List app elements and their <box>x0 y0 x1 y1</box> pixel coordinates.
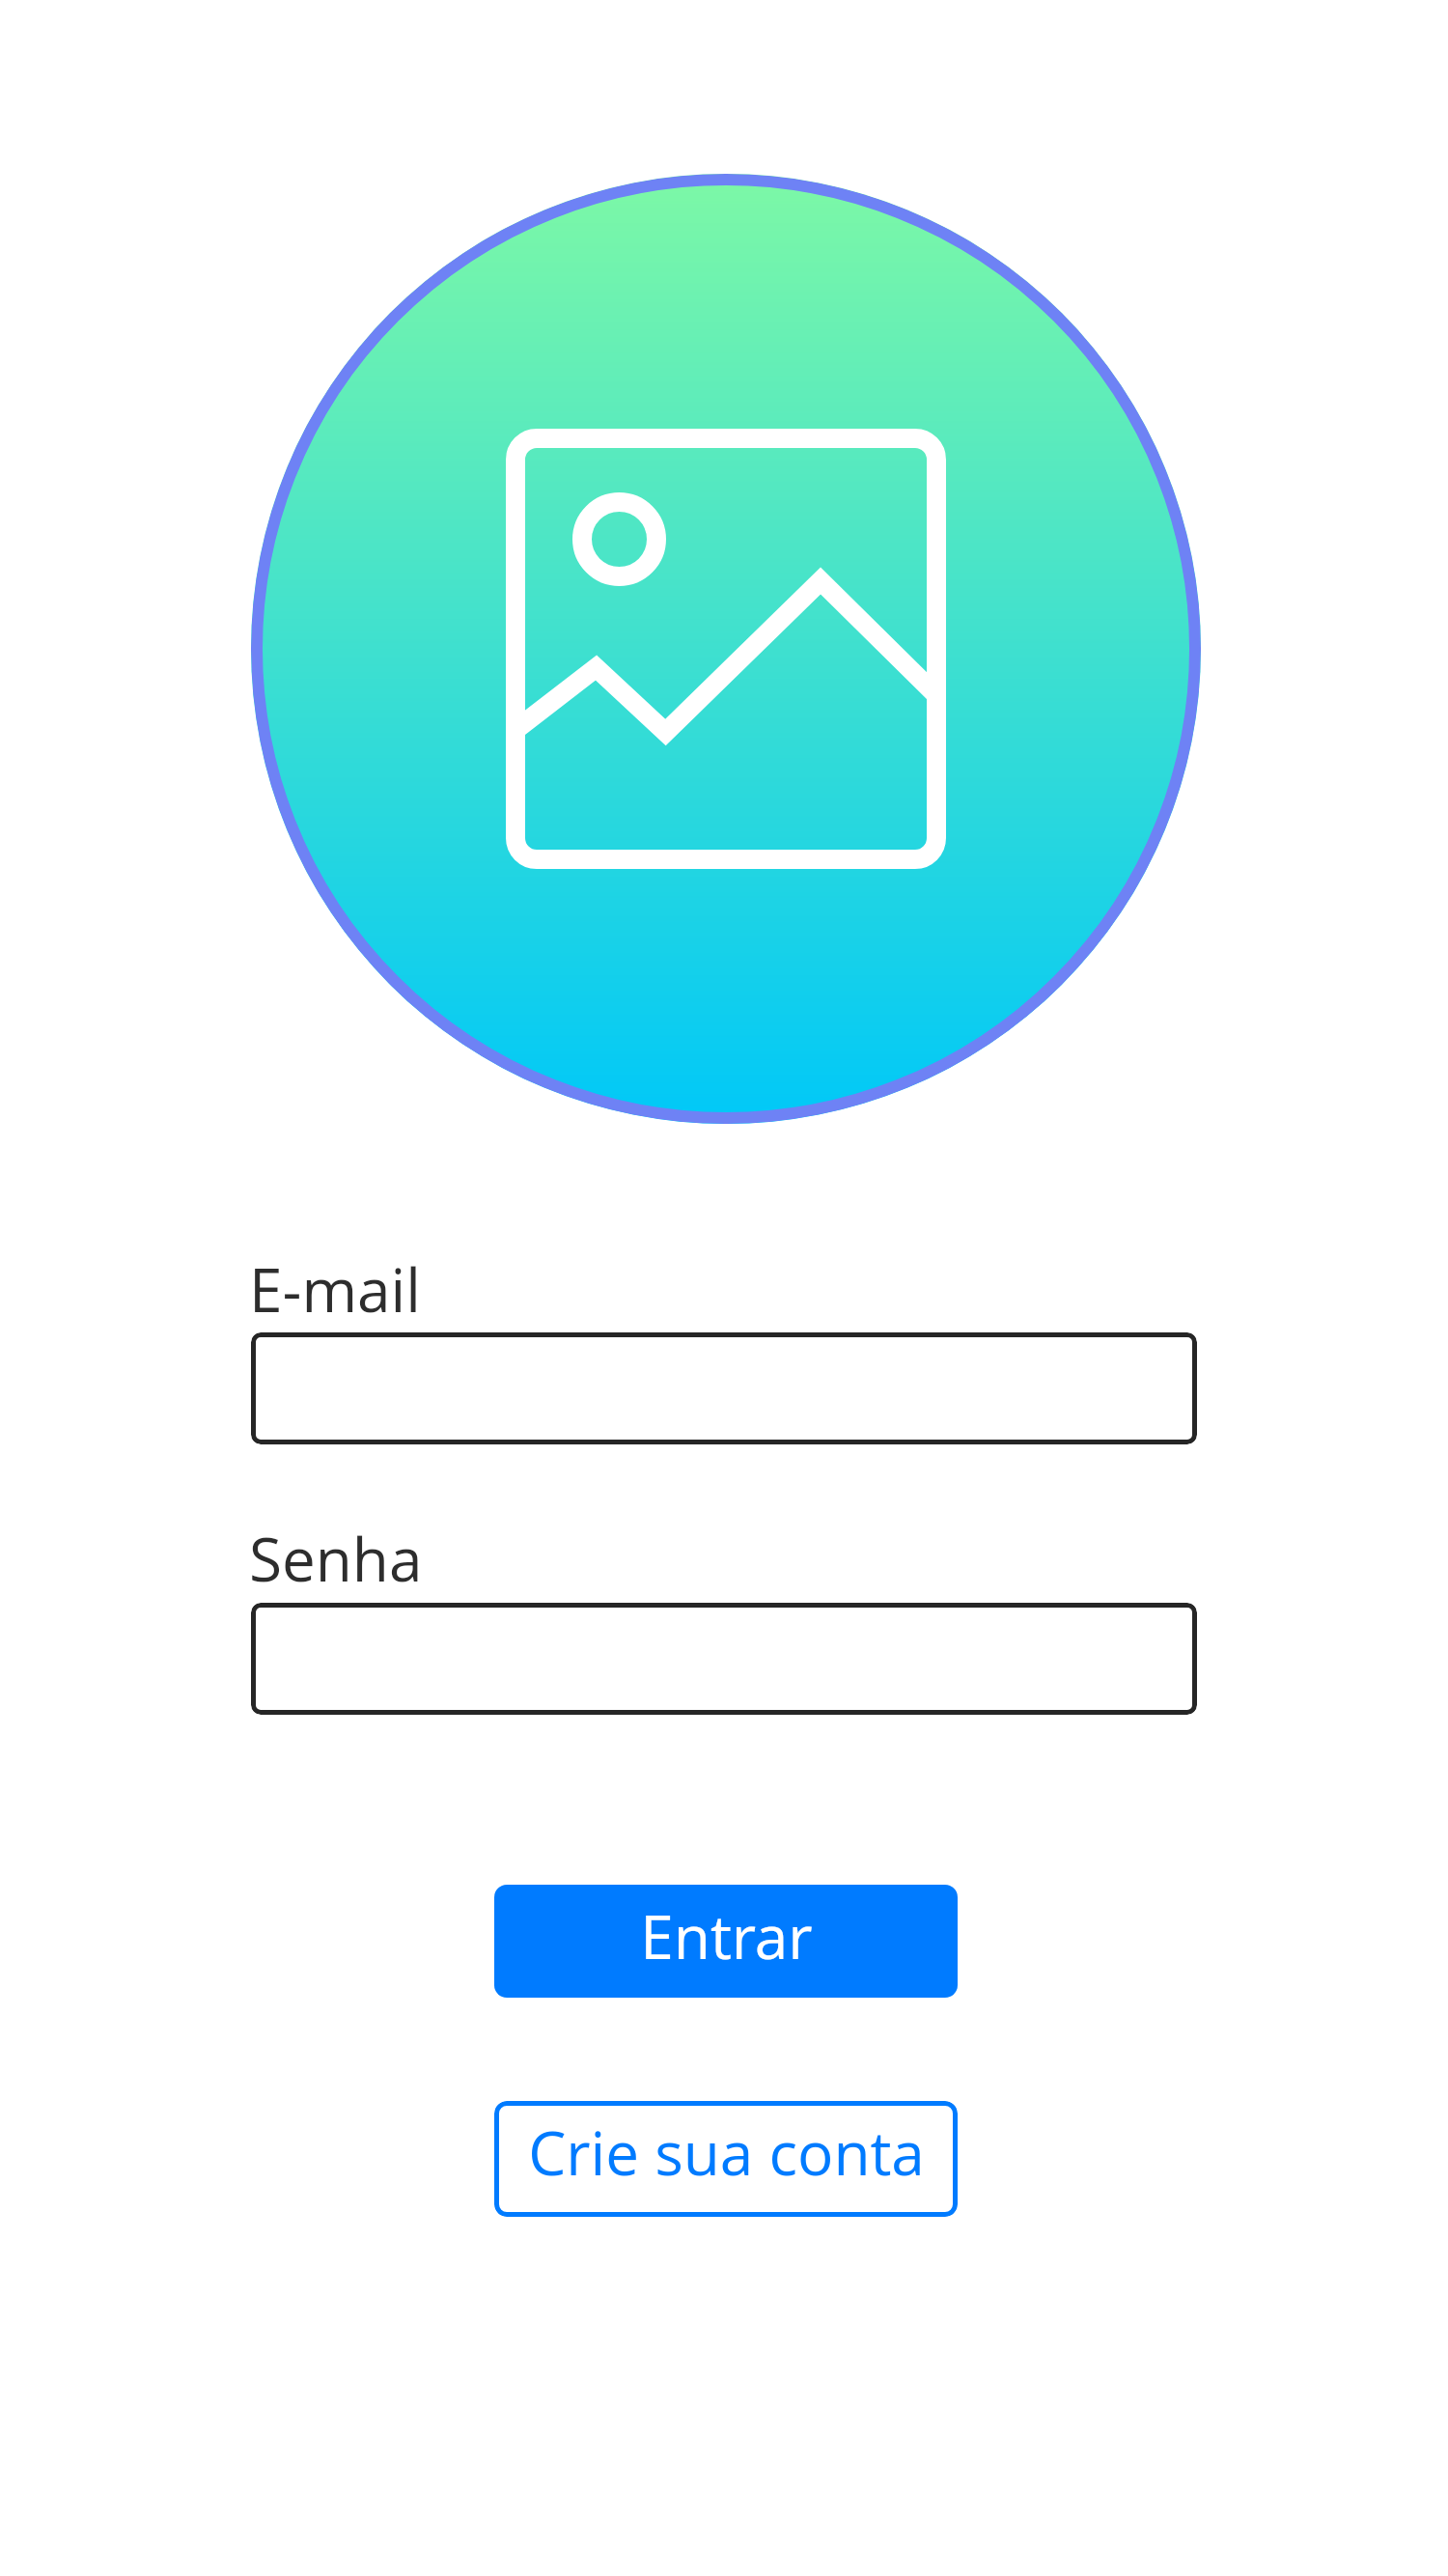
staticText: Senha <box>249 1518 423 1599</box>
button[interactable]: Entrar <box>494 1885 958 1998</box>
button[interactable]: Senha input field <box>251 1603 1197 1715</box>
staticText: E-mail <box>249 1248 421 1330</box>
button[interactable]: E-mail input field <box>251 1332 1197 1444</box>
staticText: Crie sua conta <box>528 2112 925 2193</box>
other: App logo <box>251 174 1201 1124</box>
button[interactable]: Crie sua conta <box>494 2101 958 2217</box>
staticText: Entrar <box>640 1895 813 1976</box>
